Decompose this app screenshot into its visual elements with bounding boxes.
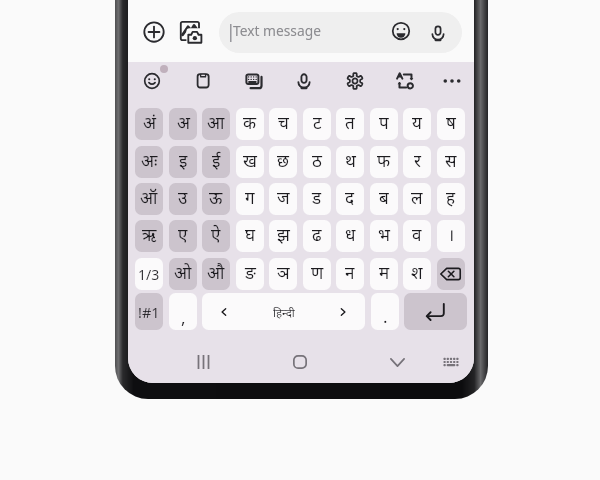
staticText: उ [178, 186, 188, 209]
button[interactable]: अ [169, 108, 197, 140]
button[interactable]: ख [236, 146, 264, 178]
button[interactable]: त [336, 108, 364, 140]
button[interactable]: द [336, 183, 364, 215]
button[interactable]: ऋ [135, 220, 163, 252]
button[interactable]: स [437, 146, 465, 178]
button[interactable]: ऑ [135, 183, 163, 215]
staticText: घ [245, 223, 256, 246]
staticText: , [181, 306, 186, 329]
button[interactable]: । [437, 220, 465, 252]
staticText: स [445, 149, 457, 172]
staticText: र [414, 149, 421, 172]
staticText: ध [345, 223, 356, 246]
staticText: ए [178, 223, 188, 246]
button[interactable]: घ [236, 220, 264, 252]
button[interactable]: झ [269, 220, 297, 252]
button[interactable]: छ [269, 146, 297, 178]
button[interactable]: More options [440, 69, 464, 93]
button[interactable]: श [403, 258, 431, 290]
staticText: !#1 [138, 302, 160, 322]
button[interactable]: ढ [303, 220, 331, 252]
button[interactable]: फ [370, 146, 398, 178]
button[interactable]: ङ [236, 258, 264, 290]
button[interactable]: उ [169, 183, 197, 215]
button[interactable]: . [371, 293, 399, 330]
staticText: औ [207, 261, 225, 284]
button[interactable]: Switch keyboard [434, 348, 468, 376]
button[interactable]: प [370, 108, 398, 140]
button[interactable]: ध [336, 220, 364, 252]
button[interactable]: Enter [404, 293, 467, 330]
staticText: भ [378, 223, 390, 246]
button[interactable] [437, 258, 465, 290]
staticText: हिन्दी [273, 305, 295, 321]
staticText: श [411, 261, 423, 284]
button[interactable]: Emoji [140, 69, 164, 93]
button[interactable]: Emoji [389, 19, 413, 43]
button[interactable]: Settings [343, 69, 367, 93]
button[interactable]: Add attachment [138, 16, 170, 48]
button[interactable]: ए [169, 220, 197, 252]
staticText: इ [179, 149, 188, 172]
button[interactable]: !#1 [135, 293, 163, 330]
button[interactable]: हिन्दी [202, 293, 365, 330]
button[interactable]: Keyboard modes [241, 69, 265, 93]
button[interactable]: च [269, 108, 297, 140]
button[interactable]: ष [437, 108, 465, 140]
staticText: ऋ [142, 223, 157, 246]
staticText: ब [379, 186, 389, 209]
button[interactable]: ड [303, 183, 331, 215]
button[interactable]: न [336, 258, 364, 290]
button[interactable]: Voice input [426, 21, 450, 45]
button[interactable]: थ [336, 146, 364, 178]
staticText: ह [446, 186, 456, 209]
button[interactable]: आ [202, 108, 230, 140]
button[interactable]: ज [269, 183, 297, 215]
button[interactable]: औ [202, 258, 230, 290]
button[interactable]: ब [370, 183, 398, 215]
button[interactable]: Translate [393, 69, 417, 93]
staticText: ष [446, 111, 456, 134]
button[interactable]: ओ [169, 258, 197, 290]
button[interactable]: भ [370, 220, 398, 252]
button[interactable]: य [403, 108, 431, 140]
button[interactable]: Recents [186, 348, 220, 376]
staticText: ण [311, 261, 324, 284]
button[interactable]: Gallery and camera [175, 16, 207, 48]
button[interactable]: Clipboard [191, 69, 215, 93]
button[interactable]: ठ [303, 146, 331, 178]
button[interactable]: ञ [269, 258, 297, 290]
staticText: ट [313, 111, 322, 134]
button[interactable]: इ [169, 146, 197, 178]
button[interactable]: अं [135, 108, 163, 140]
button[interactable]: 1/3 [135, 258, 163, 290]
button[interactable]: ट [303, 108, 331, 140]
button[interactable]: ऐ [202, 220, 230, 252]
button[interactable]: म [370, 258, 398, 290]
staticText: । [448, 223, 455, 246]
button[interactable]: Home [283, 348, 317, 376]
staticText: त [345, 111, 355, 134]
button[interactable]: ण [303, 258, 331, 290]
button[interactable]: Text message [219, 12, 462, 53]
button[interactable]: Hide keyboard [380, 348, 414, 376]
button[interactable]: ऊ [202, 183, 230, 215]
button[interactable]: ल [403, 183, 431, 215]
button[interactable]: ग [236, 183, 264, 215]
button[interactable]: व [403, 220, 431, 252]
staticText: ई [212, 149, 221, 172]
button[interactable]: Voice typing [292, 69, 316, 93]
button[interactable]: ई [202, 146, 230, 178]
staticText: . [383, 305, 388, 328]
staticText: ऑ [140, 186, 158, 209]
button[interactable]: , [169, 293, 197, 330]
staticText: Text message [233, 21, 321, 40]
button[interactable]: अः [135, 146, 163, 178]
button[interactable]: र [403, 146, 431, 178]
staticText: ग [245, 186, 255, 209]
button[interactable]: ह [437, 183, 465, 215]
button[interactable]: क [236, 108, 264, 140]
staticText: व [412, 223, 422, 246]
staticText: झ [277, 223, 290, 246]
staticText: ओ [174, 261, 192, 284]
